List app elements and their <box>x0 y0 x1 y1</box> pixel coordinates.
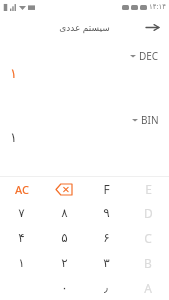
button[interactable]: DEC <box>128 48 161 64</box>
staticText: C <box>144 230 152 246</box>
staticText: DEC <box>139 49 159 63</box>
button[interactable]: C <box>127 225 169 250</box>
staticText: ۱۴:۱۴ <box>149 2 166 12</box>
button[interactable]: ۱ <box>0 250 43 275</box>
staticText: ۴ <box>18 231 25 245</box>
staticText: F <box>103 181 110 197</box>
button[interactable]: ۷ <box>0 201 43 225</box>
staticText: سیستم عددی <box>59 21 110 33</box>
staticText: ۷ <box>18 206 25 220</box>
button[interactable]: ٫ <box>85 275 127 300</box>
staticText: D <box>144 205 153 221</box>
staticText: ۱ <box>18 256 25 270</box>
button[interactable]: D <box>127 201 169 225</box>
staticText: ۸ <box>61 206 68 220</box>
staticText: E <box>145 181 152 197</box>
button[interactable]: ۸ <box>43 201 85 225</box>
staticText: ۹ <box>103 206 110 220</box>
staticText: A <box>144 280 152 296</box>
button[interactable]: ۰ <box>43 275 85 300</box>
button[interactable]: ۵ <box>43 225 85 250</box>
button[interactable]: B <box>127 250 169 275</box>
button[interactable]: BIN <box>130 112 161 128</box>
staticText: ۳ <box>103 256 110 270</box>
button[interactable]: ۴ <box>0 225 43 250</box>
button[interactable]: Backspace <box>43 177 85 201</box>
staticText: B <box>144 255 152 271</box>
button[interactable]: E <box>127 177 169 201</box>
button[interactable]: ۲ <box>43 250 85 275</box>
button[interactable]: ۶ <box>85 225 127 250</box>
button[interactable]: A <box>127 275 169 300</box>
button[interactable]: ۹ <box>85 201 127 225</box>
button[interactable]: AC <box>0 177 43 201</box>
button[interactable]: F <box>85 177 127 201</box>
staticText: ۰ <box>61 281 68 295</box>
staticText: BIN <box>141 113 159 127</box>
button[interactable]: ۳ <box>85 250 127 275</box>
staticText: ۲ <box>61 256 68 270</box>
staticText: ۱ <box>10 130 17 145</box>
staticText: ٫ <box>104 281 108 295</box>
staticText: ۶ <box>103 231 110 245</box>
button[interactable]: Convert <box>141 16 163 38</box>
staticText: ۵ <box>61 231 68 245</box>
staticText: AC <box>15 182 29 197</box>
staticText: ۱ <box>10 66 17 81</box>
